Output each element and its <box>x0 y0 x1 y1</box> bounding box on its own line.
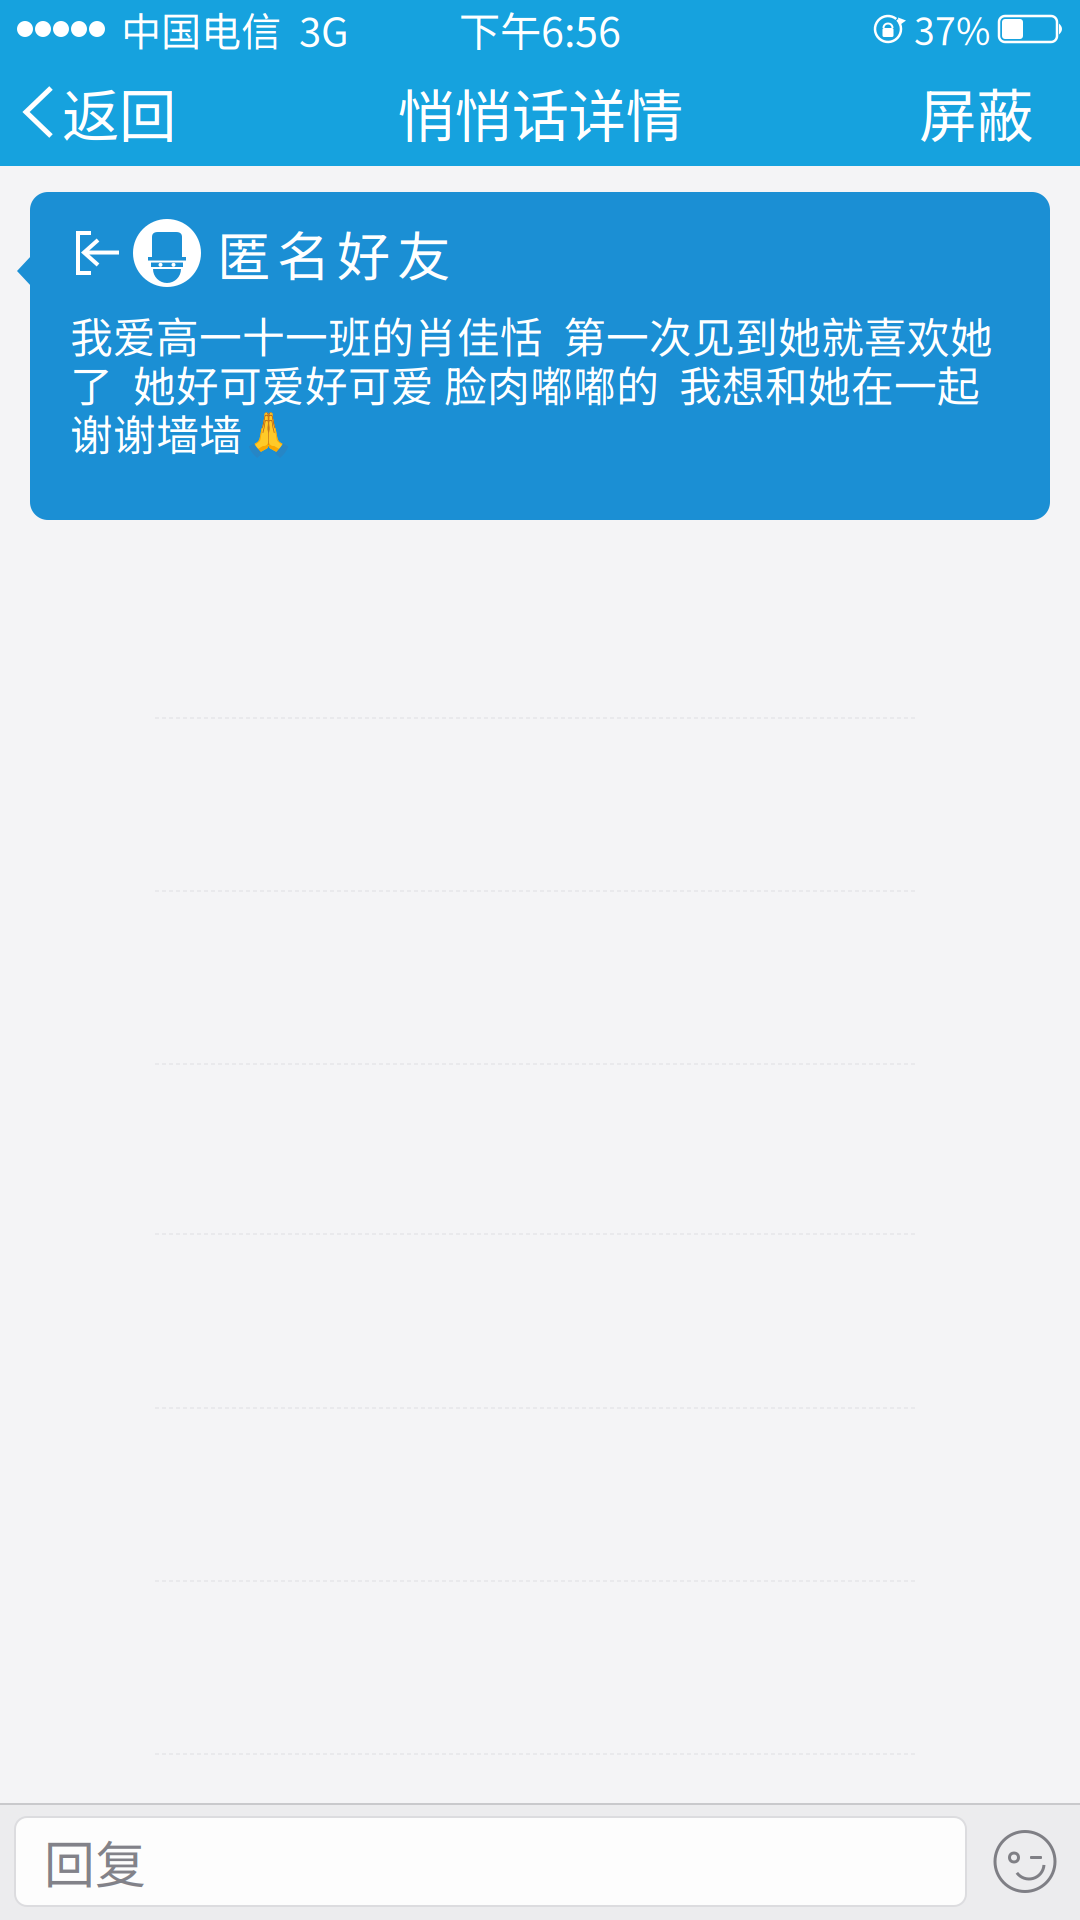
staticText: 中国电信 <box>121 0 281 58</box>
staticText: 悄悄话详情 <box>397 70 682 153</box>
staticText: 返回 <box>62 70 176 153</box>
staticText: 了 她好可爱好可爱 脸肉嘟嘟的 我想和她在一起 <box>70 353 980 415</box>
button[interactable]: 匿名好友 <box>30 192 1050 520</box>
button[interactable]: 回复 <box>15 1817 966 1906</box>
staticText: 37% <box>914 2 990 56</box>
button[interactable]: 屏蔽 <box>883 58 1080 166</box>
button[interactable]: Emoji <box>970 1817 1080 1906</box>
staticText: 谢谢墙墙🙏 <box>70 402 295 463</box>
staticText: 我爱高一十一班的肖佳恬 第一次见到她就喜欢她 <box>70 304 993 366</box>
staticText: 下午6:56 <box>459 0 621 59</box>
staticText: 屏蔽 <box>919 70 1033 153</box>
staticText: 3G <box>299 0 349 58</box>
staticText: 回复 <box>44 1825 146 1898</box>
staticText: 匿名好友 <box>217 214 450 292</box>
button[interactable]: 返回 <box>0 58 200 166</box>
